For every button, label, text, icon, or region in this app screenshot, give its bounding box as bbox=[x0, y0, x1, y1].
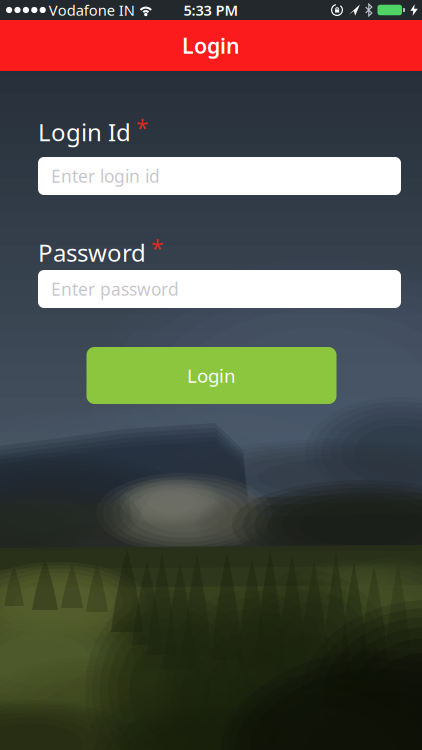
staticText: Vodafone IN bbox=[49, 0, 135, 20]
staticText: Enter password bbox=[51, 277, 179, 300]
staticText: Login bbox=[187, 363, 236, 388]
staticText: Login bbox=[182, 31, 240, 60]
staticText: * bbox=[151, 233, 163, 264]
staticText: Login Id bbox=[38, 116, 131, 148]
staticText: Password bbox=[38, 237, 146, 268]
button[interactable]: Enter password bbox=[38, 270, 401, 308]
button[interactable]: Login bbox=[86, 347, 336, 404]
button[interactable]: Enter login id bbox=[38, 157, 401, 195]
staticText: * bbox=[136, 113, 148, 143]
staticText: Enter login id bbox=[51, 164, 160, 187]
staticText: 5:33 PM bbox=[183, 0, 238, 20]
